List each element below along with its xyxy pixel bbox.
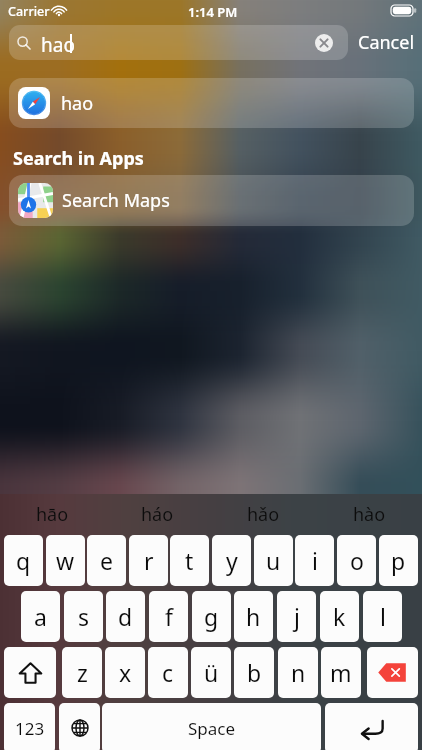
staticText: a	[34, 601, 47, 632]
button[interactable]: hǎo	[210, 494, 316, 535]
button[interactable]: háo	[105, 494, 210, 535]
button[interactable]: hao	[9, 25, 348, 60]
button[interactable]: Space	[102, 703, 321, 750]
button[interactable]: hao	[9, 78, 414, 128]
staticText: r	[144, 545, 154, 576]
staticText: b	[247, 657, 262, 688]
button[interactable]: g	[192, 591, 231, 642]
button[interactable]: t	[170, 535, 209, 586]
staticText: j	[294, 601, 300, 632]
staticText: g	[204, 601, 219, 632]
button[interactable]: e	[87, 535, 126, 586]
staticText: Carrier	[8, 3, 50, 20]
button[interactable]: Cancel	[352, 25, 420, 60]
staticText: hao	[61, 91, 94, 116]
button[interactable]: s	[64, 591, 103, 642]
staticText: Space	[188, 717, 236, 740]
button[interactable]: z	[62, 647, 102, 698]
button[interactable]: w	[46, 535, 85, 586]
button[interactable]: r	[129, 535, 168, 586]
staticText: n	[291, 657, 306, 688]
staticText: x	[119, 657, 132, 688]
button[interactable]: Return	[325, 703, 418, 750]
button[interactable]: o	[337, 535, 376, 586]
staticText: s	[78, 601, 90, 632]
button[interactable]: j	[277, 591, 316, 642]
staticText: k	[333, 601, 346, 632]
button[interactable]: Switch keyboard	[59, 703, 100, 750]
button[interactable]: k	[320, 591, 359, 642]
button[interactable]: i	[295, 535, 334, 586]
staticText: p	[391, 545, 406, 576]
button[interactable]: n	[278, 647, 318, 698]
staticText: 1:14 PM	[188, 3, 238, 21]
staticText: z	[77, 657, 88, 688]
staticText: hāo	[36, 502, 69, 527]
staticText: q	[16, 545, 31, 576]
button[interactable]: l	[363, 591, 402, 642]
staticText: w	[56, 545, 75, 576]
button[interactable]: h	[234, 591, 273, 642]
button[interactable]: m	[321, 647, 361, 698]
button[interactable]: f	[149, 591, 188, 642]
staticText: ü	[204, 657, 219, 688]
button[interactable]: Shift	[4, 647, 56, 698]
staticText: i	[312, 545, 318, 576]
staticText: h	[246, 601, 261, 632]
button[interactable]: hào	[316, 494, 422, 535]
button[interactable]: u	[254, 535, 293, 586]
staticText: hao	[41, 32, 75, 58]
button[interactable]: 123	[4, 703, 55, 750]
staticText: o	[350, 545, 364, 576]
button[interactable]: Backspace	[367, 647, 418, 698]
staticText: 123	[15, 717, 45, 740]
staticText: t	[185, 545, 194, 576]
button[interactable]: y	[212, 535, 251, 586]
staticText: l	[380, 601, 386, 632]
button[interactable]: hāo	[0, 494, 105, 535]
staticText: Search in Apps	[13, 146, 144, 171]
staticText: c	[162, 657, 174, 688]
staticText: hǎo	[247, 502, 280, 527]
staticText: f	[165, 601, 173, 632]
staticText: d	[118, 601, 133, 632]
button[interactable]: q	[4, 535, 43, 586]
button[interactable]: d	[106, 591, 145, 642]
staticText: e	[100, 545, 113, 576]
button[interactable]: x	[105, 647, 145, 698]
staticText: Search Maps	[62, 188, 170, 213]
button[interactable]: b	[234, 647, 274, 698]
staticText: u	[266, 545, 281, 576]
button[interactable]: Search Maps	[9, 175, 414, 226]
staticText: háo	[141, 502, 174, 527]
staticText: m	[330, 657, 352, 688]
button[interactable]: p	[379, 535, 418, 586]
button[interactable]: a	[21, 591, 60, 642]
staticText: hào	[353, 502, 386, 527]
button[interactable]: c	[148, 647, 188, 698]
button[interactable]: ü	[191, 647, 231, 698]
staticText: y	[226, 545, 238, 576]
staticText: Cancel	[358, 30, 415, 55]
